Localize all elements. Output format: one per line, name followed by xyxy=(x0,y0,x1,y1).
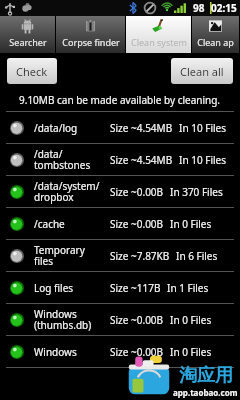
staticText: Size ~0.00B xyxy=(110,217,164,231)
staticText: /cache xyxy=(34,217,65,231)
button[interactable]: Searcher xyxy=(0,16,55,53)
staticText: Size ~4.54MB xyxy=(110,153,173,167)
staticText: In 370 Files xyxy=(170,185,223,199)
staticText: 98 xyxy=(193,1,205,15)
staticText: In 10 Files xyxy=(179,121,226,135)
staticText: /data/log xyxy=(34,121,78,135)
button[interactable]: /data/log xyxy=(0,112,240,143)
staticText: Clean ap xyxy=(197,36,234,48)
staticText: In 1 Files xyxy=(167,281,209,295)
staticText: Size ~7.87KB xyxy=(110,249,170,263)
button[interactable]: Clean all xyxy=(171,58,233,84)
staticText: Clean all xyxy=(180,64,224,79)
staticText: Size ~0.00B xyxy=(110,345,164,359)
button[interactable]: Windows xyxy=(0,336,240,367)
staticText: 淘应用 xyxy=(179,364,233,387)
staticText: Clean system xyxy=(131,36,187,48)
staticText: In 0 Files xyxy=(170,345,212,359)
button[interactable]: Check xyxy=(7,58,57,84)
staticText: 9.10MB can be made available by cleaning… xyxy=(19,93,221,107)
staticText: In 0 Files xyxy=(170,313,212,327)
staticText: Size ~0.00B xyxy=(110,185,164,199)
button[interactable]: Windows (thumbs.db) xyxy=(0,304,240,335)
button[interactable]: /data/ tombstones xyxy=(0,144,240,175)
button[interactable]: Log files xyxy=(0,272,240,303)
staticText: In 6 Files xyxy=(176,249,218,263)
staticText: Log files xyxy=(34,281,74,295)
button[interactable]: /data/system/ dropbox xyxy=(0,176,240,207)
staticText: In 10 Files xyxy=(179,153,226,167)
staticText: Searcher xyxy=(9,36,47,48)
staticText: Windows xyxy=(34,345,77,359)
staticText: Temporary files xyxy=(34,243,85,268)
staticText: app.taobao.com xyxy=(173,387,238,398)
button[interactable]: Clean ap xyxy=(192,16,239,53)
button[interactable]: /cache xyxy=(0,208,240,239)
button[interactable]: Clean system xyxy=(126,16,191,53)
staticText: Size ~0.00B xyxy=(110,313,164,327)
staticText: /data/system/ dropbox xyxy=(34,179,100,204)
staticText: Check xyxy=(16,64,48,79)
staticText: Size ~117B xyxy=(110,281,161,295)
button[interactable]: Temporary files xyxy=(0,240,240,271)
staticText: Corpse finder xyxy=(62,36,120,48)
staticText: Size ~4.54MB xyxy=(110,121,173,135)
staticText: In 0 Files xyxy=(170,217,212,231)
button[interactable]: Corpse finder xyxy=(56,16,125,53)
staticText: 02:15 xyxy=(211,1,237,15)
staticText: Windows (thumbs.db) xyxy=(34,307,92,332)
staticText: /data/ tombstones xyxy=(34,147,91,172)
